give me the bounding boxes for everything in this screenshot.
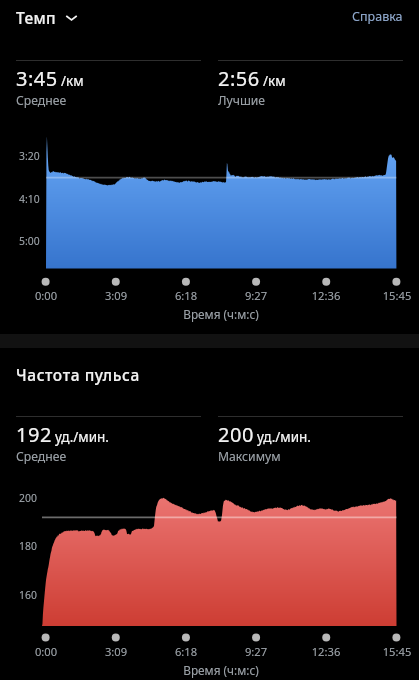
staticText: 200 bbox=[218, 421, 254, 448]
staticText: 12:36 bbox=[306, 644, 346, 659]
staticText: уд./мин. bbox=[257, 428, 311, 446]
button[interactable]: 192 bbox=[16, 416, 201, 465]
staticText: 3:20 bbox=[19, 149, 40, 163]
staticText: 15:45 bbox=[377, 644, 417, 659]
staticText: Темп bbox=[16, 7, 56, 28]
staticText: Среднее bbox=[16, 448, 67, 465]
staticText: 3:09 bbox=[96, 288, 136, 303]
staticText: 9:27 bbox=[236, 288, 276, 303]
staticText: Среднее bbox=[16, 92, 67, 109]
staticText: 2:56 bbox=[218, 65, 260, 92]
button[interactable]: 200 bbox=[218, 416, 403, 465]
staticText: 180 bbox=[19, 539, 37, 553]
staticText: Лучшие bbox=[218, 92, 266, 109]
button[interactable]: 2:56 bbox=[218, 60, 403, 109]
staticText: Время (ч:м:с) bbox=[121, 662, 321, 678]
staticText: Максимум bbox=[218, 448, 281, 465]
staticText: 160 bbox=[19, 588, 37, 602]
staticText: /км bbox=[263, 72, 286, 90]
staticText: 192 bbox=[16, 421, 52, 448]
staticText: Время (ч:м:с) bbox=[121, 306, 321, 322]
staticText: 200 bbox=[19, 491, 37, 505]
button[interactable]: 3:45 bbox=[16, 60, 201, 109]
staticText: Справка bbox=[352, 8, 403, 25]
staticText: уд./мин. bbox=[55, 428, 109, 446]
staticText: 6:18 bbox=[166, 288, 206, 303]
staticText: 3:45 bbox=[16, 65, 58, 92]
staticText: 0:00 bbox=[26, 644, 66, 659]
button[interactable]: Темп bbox=[16, 7, 79, 28]
staticText: 3:09 bbox=[96, 644, 136, 659]
staticText: 9:27 bbox=[236, 644, 276, 659]
staticText: 0:00 bbox=[26, 288, 66, 303]
staticText: 12:36 bbox=[306, 288, 346, 303]
staticText: Частота пульса bbox=[16, 364, 140, 385]
staticText: 15:45 bbox=[377, 288, 417, 303]
staticText: 5:00 bbox=[19, 234, 40, 248]
button[interactable]: Справка bbox=[352, 8, 403, 25]
staticText: 6:18 bbox=[166, 644, 206, 659]
staticText: /км bbox=[61, 72, 84, 90]
staticText: 4:10 bbox=[19, 192, 40, 206]
